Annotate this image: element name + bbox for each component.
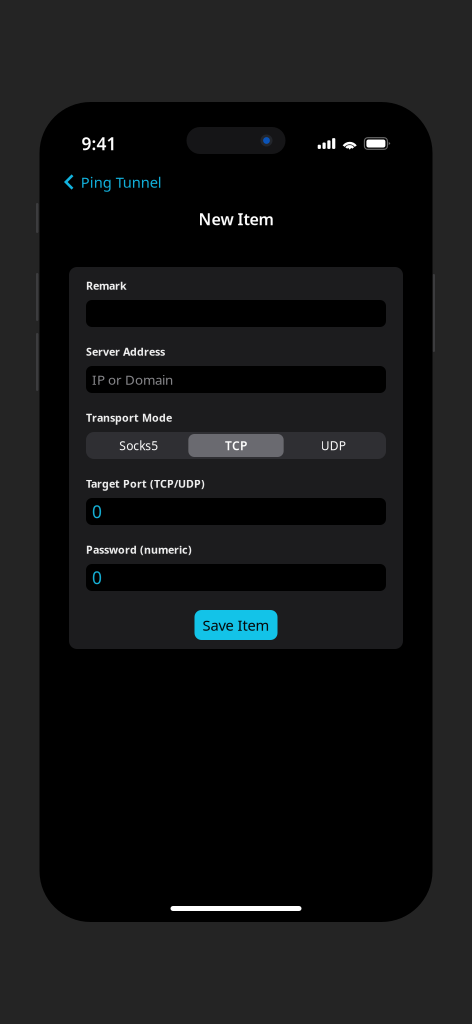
button[interactable]: Socks5	[91, 434, 186, 457]
staticText: Ping Tunnel	[81, 172, 162, 192]
button[interactable]: UDP	[286, 434, 381, 457]
staticText: Server Address	[86, 344, 165, 359]
button[interactable]: TCP	[188, 434, 284, 457]
button[interactable]: Save Item	[194, 610, 277, 640]
staticText: New Item	[198, 208, 273, 230]
staticText: Password (numeric)	[86, 542, 192, 557]
staticText: TCP	[225, 437, 247, 453]
staticText: Save Item	[202, 615, 269, 635]
staticText: Transport Mode	[86, 410, 172, 425]
staticText: Remark	[86, 278, 127, 293]
button[interactable]: Ping Tunnel	[64, 172, 162, 192]
staticText: 0	[92, 500, 102, 523]
staticText: Socks5	[119, 437, 158, 453]
staticText: UDP	[321, 437, 346, 453]
staticText: IP or Domain	[92, 371, 173, 388]
button[interactable]: 0	[86, 498, 386, 525]
button[interactable]: IP or Domain	[86, 366, 386, 393]
staticText: 0	[92, 566, 102, 589]
staticText: 9:41	[81, 132, 116, 155]
button[interactable]: 0	[86, 564, 386, 591]
staticText: Target Port (TCP/UDP)	[86, 476, 205, 491]
